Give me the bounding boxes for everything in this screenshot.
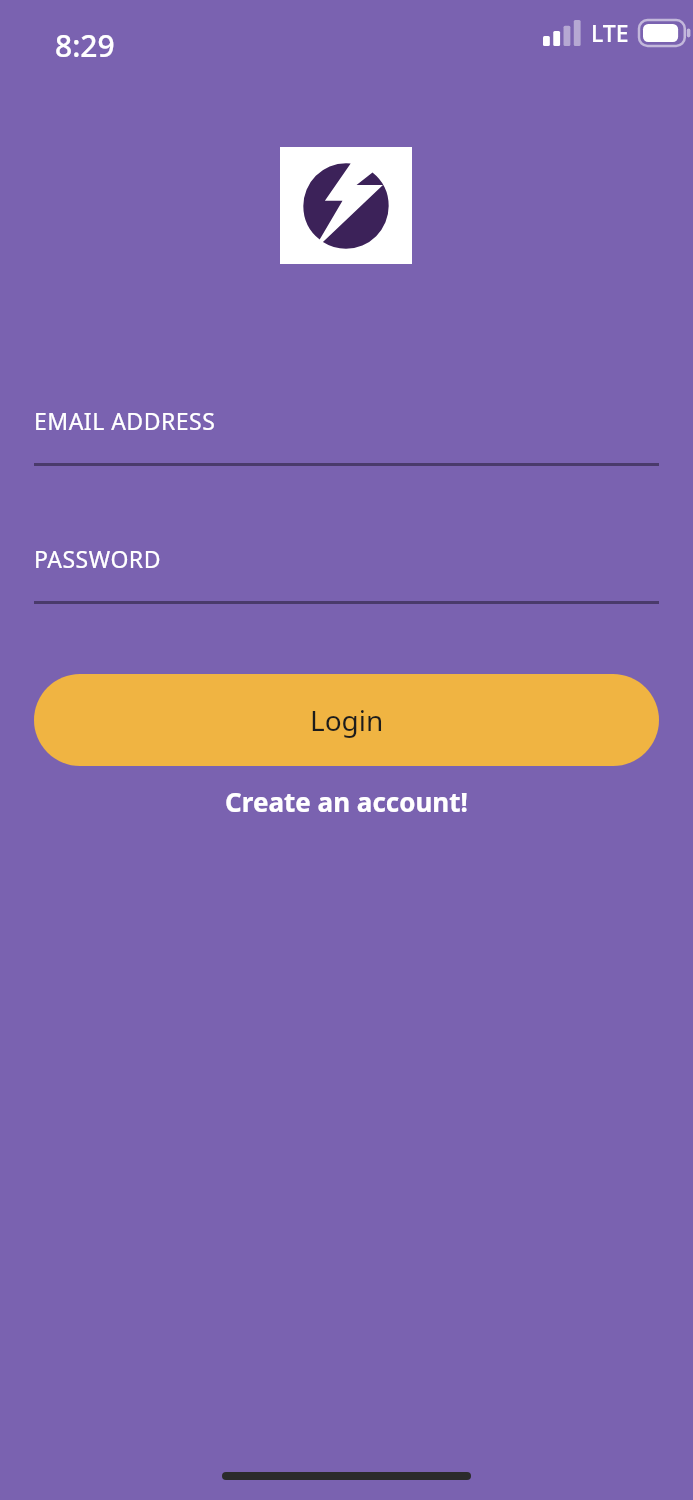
button[interactable]: Create an account!: [34, 784, 659, 819]
staticText: Create an account!: [225, 784, 468, 819]
staticText: Login: [310, 701, 384, 739]
staticText: 8:29: [55, 25, 115, 66]
staticText: PASSWORD: [34, 543, 161, 574]
staticText: EMAIL ADDRESS: [34, 405, 216, 436]
staticText: LTE: [591, 17, 629, 48]
button[interactable]: Login: [34, 674, 659, 766]
